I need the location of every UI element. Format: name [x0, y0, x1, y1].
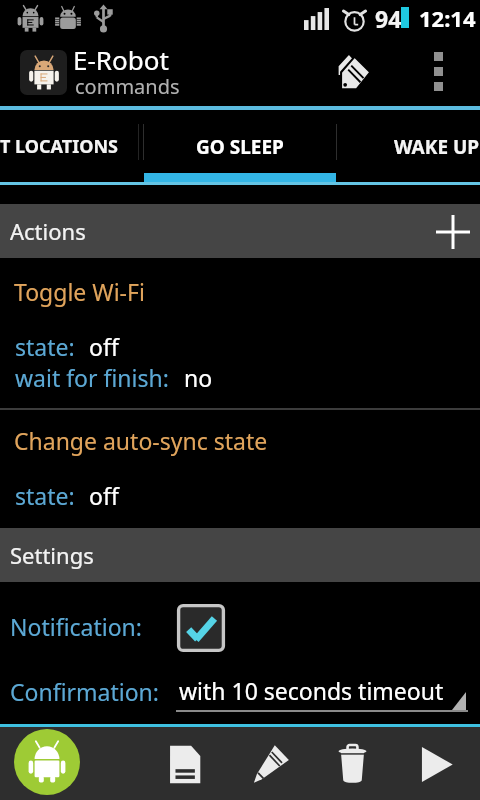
staticText: Toggle Wi-Fi [14, 276, 145, 307]
staticText: wait for finish: [15, 362, 169, 393]
button[interactable]: Delete [318, 730, 386, 798]
staticText: state: [15, 331, 75, 362]
staticText: Actions [10, 216, 86, 246]
button[interactable]: Notification [0, 590, 480, 652]
button[interactable]: E-Robot [14, 729, 80, 795]
button[interactable]: Confirmation option [176, 658, 468, 714]
button[interactable]: T LOCATIONS [0, 110, 144, 173]
staticText: with 10 seconds timeout [179, 675, 444, 706]
staticText: Change auto-sync state [14, 425, 268, 456]
button[interactable]: Toggle Wi-Fi [0, 258, 480, 408]
staticText: commands [75, 73, 180, 100]
staticText: state: [15, 480, 75, 511]
staticText: E-Robot [73, 42, 169, 77]
staticText: Confirmation: [10, 676, 159, 707]
button[interactable]: Edit [237, 730, 305, 798]
button[interactable]: WAKE UP [336, 110, 480, 173]
button[interactable]: Run [403, 730, 471, 798]
button[interactable]: Save [151, 730, 219, 798]
staticText: WAKE UP [394, 134, 480, 160]
button[interactable]: More options [410, 37, 466, 106]
staticText: 12:14 [419, 3, 476, 33]
button[interactable]: App icon [20, 50, 67, 95]
staticText: Settings [10, 540, 94, 570]
button[interactable]: Change auto-sync state [0, 410, 480, 528]
staticText: Notification: [10, 611, 142, 642]
staticText: off [89, 480, 119, 511]
button[interactable]: GO SLEEP [144, 110, 336, 173]
staticText: off [89, 331, 119, 362]
button[interactable]: Labels [318, 37, 390, 106]
staticText: T LOCATIONS [0, 134, 118, 159]
staticText: no [184, 362, 213, 393]
button[interactable]: Add action [426, 204, 480, 258]
staticText: GO SLEEP [196, 134, 284, 160]
staticText: 94 [375, 3, 402, 34]
